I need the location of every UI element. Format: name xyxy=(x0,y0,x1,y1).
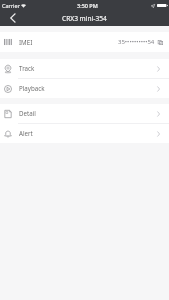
button[interactable]: Back xyxy=(4,10,21,25)
button[interactable]: Alert xyxy=(0,124,169,143)
button[interactable]: IMEI xyxy=(0,32,169,52)
staticText: 35••••••••••54 xyxy=(118,38,155,46)
button[interactable]: Playback xyxy=(0,79,169,98)
staticText: Playback xyxy=(19,84,45,92)
staticText: 3:50 PM xyxy=(77,2,98,9)
staticText: Carrier xyxy=(2,2,20,9)
staticText: Detail xyxy=(19,109,36,117)
staticText: Track xyxy=(19,64,35,72)
staticText: IMEI xyxy=(19,38,33,46)
staticText: Alert xyxy=(19,129,33,137)
button[interactable]: Detail xyxy=(0,104,169,123)
button[interactable]: Track xyxy=(0,59,169,78)
staticText: CRX3 mini-354 xyxy=(62,14,107,23)
